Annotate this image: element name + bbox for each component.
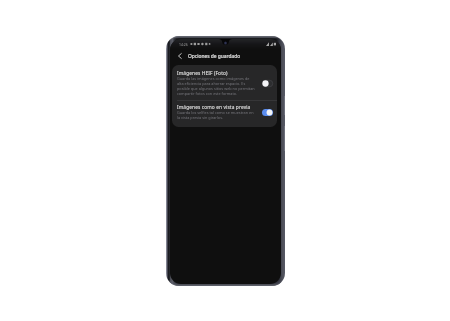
button[interactable]: Imágenes como en vista previa xyxy=(172,101,277,127)
staticText: Guarda los selfies tal como se muestran … xyxy=(177,110,255,120)
staticText: Imágenes como en vista previa xyxy=(177,104,251,111)
button[interactable]: Atrás xyxy=(174,50,185,62)
staticText: Opciones de guardado xyxy=(188,53,241,60)
staticText: 14:26 xyxy=(179,42,188,47)
button[interactable]: Desactivado xyxy=(262,80,273,87)
button[interactable]: Activado xyxy=(262,109,273,116)
staticText: Guarda las imágenes como imágenes de alt… xyxy=(177,76,255,96)
staticText: Imágenes HEIF (Foto) xyxy=(177,70,228,77)
button[interactable]: Imágenes HEIF (Foto) xyxy=(172,65,277,100)
